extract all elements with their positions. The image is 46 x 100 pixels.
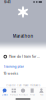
staticText: Marathon [12, 33, 33, 39]
staticText: Projects [10, 93, 18, 96]
staticText: Artifacts [18, 93, 27, 96]
staticText: How do I train for a marathon in 16 week… [9, 55, 40, 59]
button[interactable]: How do I train for a marathon in 16 week… [0, 54, 46, 60]
staticText: Claude can make mistakes [6, 83, 40, 87]
button[interactable]: Artifacts [18, 87, 28, 97]
staticText: 9:41 [4, 0, 11, 4]
button[interactable]: Files [28, 87, 37, 97]
staticText: 16 weeks [3, 72, 18, 76]
button[interactable]: Projects [9, 87, 18, 97]
staticText: Files [30, 93, 35, 96]
staticText: Chats [2, 93, 8, 96]
staticText: Training plan [3, 65, 24, 69]
button[interactable]: Chats [0, 87, 9, 97]
staticText: You [40, 93, 43, 96]
button[interactable]: You [37, 87, 46, 97]
button[interactable]: Training plan [0, 65, 46, 68]
